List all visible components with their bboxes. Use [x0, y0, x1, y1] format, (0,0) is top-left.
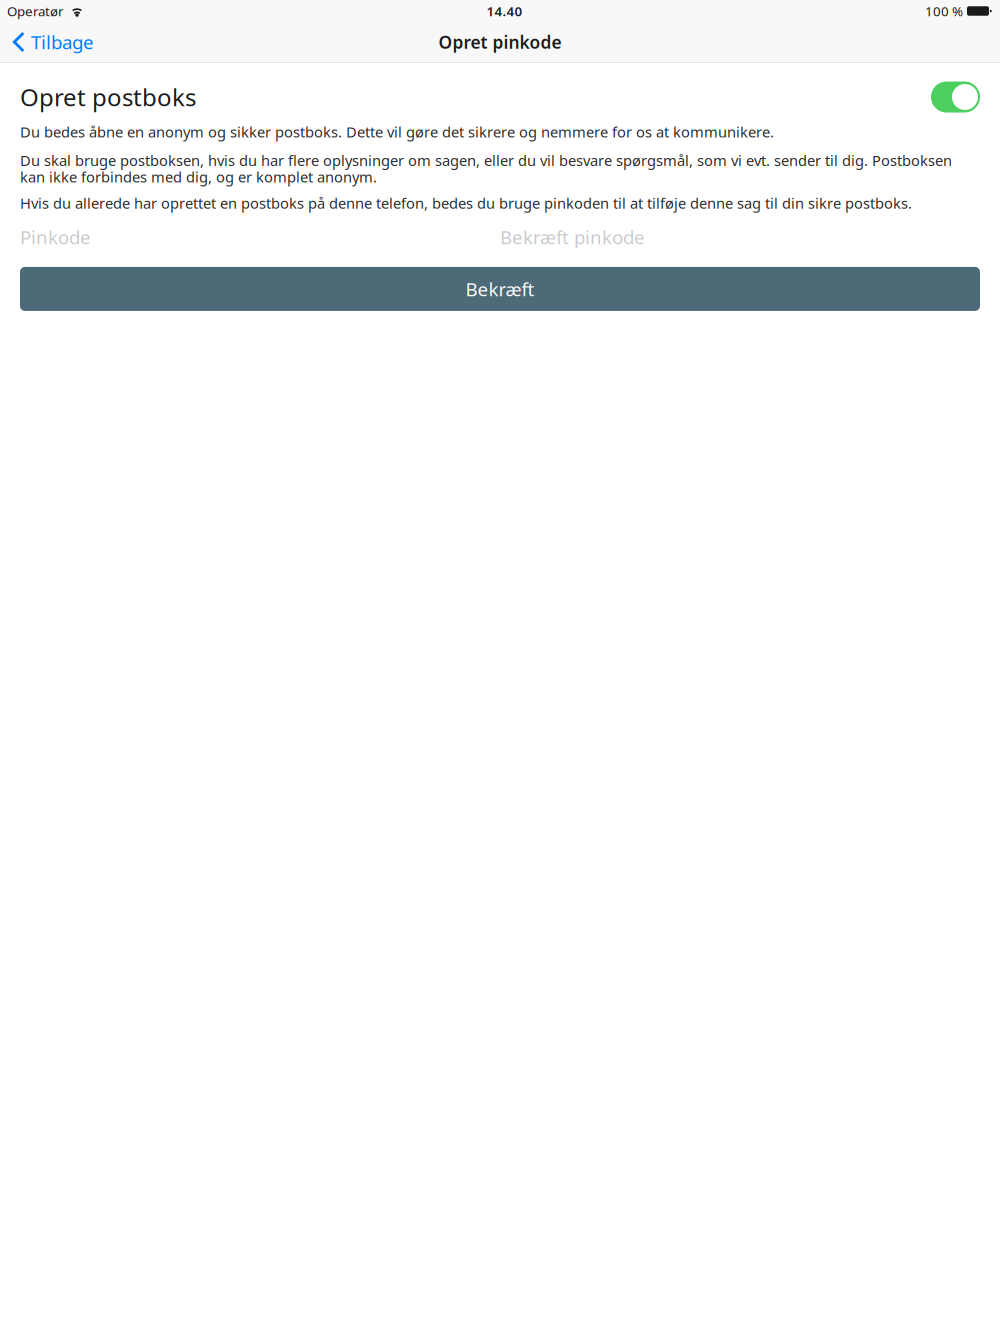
staticText: 100 %: [925, 2, 963, 20]
button[interactable]: Pinkode: [20, 224, 500, 250]
staticText: Operatør: [7, 2, 64, 20]
button[interactable]: Bekræft pinkode: [500, 224, 980, 250]
button[interactable]: Bekræft: [20, 267, 980, 311]
staticText: Tilbage: [31, 30, 94, 54]
staticText: 14.40: [486, 2, 522, 20]
staticText: Bekræft: [465, 276, 534, 301]
staticText: Du skal bruge postboksen, hvis du har fl…: [20, 150, 952, 186]
staticText: Hvis du allerede har oprettet en postbok…: [20, 193, 912, 213]
staticText: Bekræft pinkode: [500, 224, 645, 249]
button[interactable]: Tilbage: [0, 22, 108, 62]
staticText: Opret pinkode: [438, 30, 561, 53]
staticText: Pinkode: [20, 224, 91, 249]
staticText: Opret postboks: [20, 81, 196, 113]
staticText: Du bedes åbne en anonym og sikker postbo…: [20, 122, 774, 141]
button[interactable]: Opret postboks: [931, 81, 980, 112]
